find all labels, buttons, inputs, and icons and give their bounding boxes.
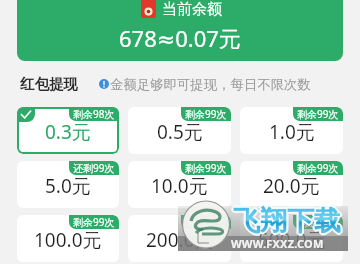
staticText: 剩余99次	[297, 215, 339, 229]
staticText: 红包提现	[20, 75, 78, 93]
staticText: 0.3元	[45, 119, 91, 145]
staticText: 剩余99次	[73, 215, 115, 229]
staticText: 10.0元	[151, 173, 208, 199]
staticText: 剩余99次	[185, 107, 227, 121]
button[interactable]: 5.0元	[17, 161, 119, 208]
button[interactable]: 0.3元	[17, 107, 119, 154]
button[interactable]: 1.0元	[240, 107, 343, 154]
staticText: 剩余99次	[185, 161, 227, 175]
staticText: 飞翔下载	[235, 204, 343, 238]
staticText: 1.0元	[269, 119, 315, 145]
staticText: 200.0元	[146, 227, 214, 253]
button[interactable]: 0.5元	[128, 107, 231, 154]
staticText: 500.0元	[258, 227, 326, 253]
staticText: 678≈0.07元	[119, 23, 241, 53]
staticText: 飞翔下载	[232, 203, 340, 237]
button[interactable]: 10.0元	[128, 161, 231, 208]
staticText: 剩余98次	[73, 107, 115, 121]
staticText: WWW.FXXZ.COM	[231, 236, 324, 251]
staticText: 5.0元	[45, 173, 91, 199]
staticText: 金额足够即可提现，每日不限次数	[110, 76, 311, 93]
staticText: 0.5元	[157, 119, 203, 145]
staticText: 飞翔下载	[233, 204, 341, 238]
staticText: 飞翔下载	[234, 203, 342, 237]
staticText: 还剩99次	[73, 161, 115, 175]
button[interactable]: 500.0元	[240, 215, 343, 262]
staticText: 20.0元	[263, 173, 320, 199]
staticText: 剩余99次	[297, 107, 339, 121]
staticText: 100.0元	[34, 227, 102, 253]
staticText: 飞翔下载	[232, 205, 340, 239]
button[interactable]: 100.0元	[17, 215, 119, 262]
staticText: 当前余额	[162, 0, 222, 19]
staticText: 飞翔下载	[233, 206, 341, 240]
staticText: 飞翔下载	[233, 202, 341, 236]
staticText: 剩余99次	[185, 215, 227, 229]
staticText: 剩余99次	[297, 161, 339, 175]
button[interactable]: 200.0元	[128, 215, 231, 262]
button[interactable]: 20.0元	[240, 161, 343, 208]
staticText: 飞翔下载	[231, 204, 339, 238]
staticText: 飞翔下载	[234, 205, 342, 239]
